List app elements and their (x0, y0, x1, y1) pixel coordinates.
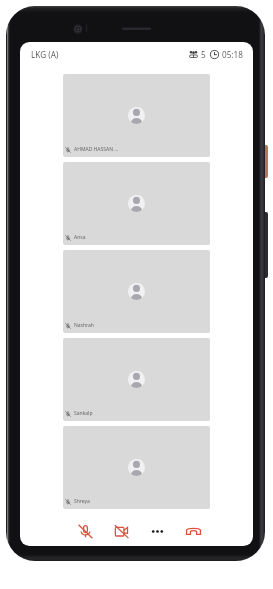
staticText: Sankalp (74, 410, 93, 417)
staticText: Ansa (74, 234, 86, 241)
button[interactable]: AHMAD HASSAN … (63, 74, 210, 157)
button[interactable]: Nashrah (63, 250, 210, 333)
staticText: 5 (201, 49, 206, 60)
button[interactable]: End call (175, 516, 211, 546)
staticText: Shreya (74, 498, 90, 505)
button[interactable]: Unmute microphone (67, 516, 103, 546)
button[interactable]: Sankalp (63, 338, 210, 421)
staticText: Nashrah (74, 322, 94, 329)
staticText: 05:18 (222, 49, 243, 60)
button[interactable]: More options (139, 516, 175, 546)
button[interactable]: Ansa (63, 162, 210, 245)
staticText: LKG (A) (31, 49, 59, 60)
button[interactable]: Turn on camera (103, 516, 139, 546)
button[interactable]: Shreya (63, 426, 210, 509)
button[interactable]: Participants (189, 49, 206, 60)
staticText: AHMAD HASSAN … (74, 146, 119, 153)
